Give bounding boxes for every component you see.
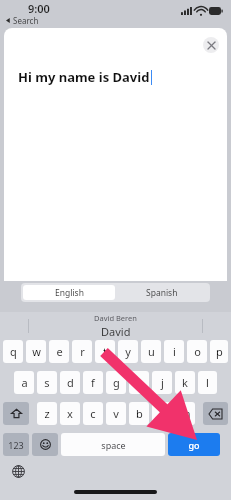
staticText: p bbox=[216, 344, 223, 359]
button[interactable]: t bbox=[95, 340, 115, 363]
staticText: m bbox=[180, 406, 191, 421]
staticText: o bbox=[194, 344, 201, 359]
button[interactable]: l bbox=[198, 371, 217, 394]
button[interactable]: Emoji bbox=[32, 433, 58, 456]
staticText: n bbox=[159, 406, 166, 421]
button[interactable]: p bbox=[210, 340, 228, 363]
staticText: k bbox=[182, 375, 188, 390]
staticText: l bbox=[206, 375, 209, 390]
staticText: Spanish bbox=[146, 287, 178, 299]
staticText: y bbox=[125, 344, 131, 359]
button[interactable]: z bbox=[37, 402, 57, 425]
staticText: i bbox=[173, 344, 176, 359]
button[interactable]: m bbox=[175, 402, 195, 425]
button[interactable]: Shift bbox=[3, 402, 29, 425]
button[interactable]: f bbox=[83, 371, 103, 394]
button[interactable]: Close bbox=[203, 37, 219, 53]
button[interactable]: e bbox=[49, 340, 69, 363]
button[interactable]: b bbox=[129, 402, 149, 425]
button[interactable]: d bbox=[60, 371, 80, 394]
staticText: space bbox=[101, 439, 126, 451]
button[interactable]: English bbox=[23, 285, 115, 300]
button[interactable]: s bbox=[37, 371, 57, 394]
button[interactable]: Change keyboard bbox=[12, 465, 25, 478]
staticText: b bbox=[136, 406, 143, 421]
button[interactable]: y bbox=[118, 340, 138, 363]
button[interactable]: r bbox=[72, 340, 92, 363]
button[interactable]: j bbox=[152, 371, 172, 394]
staticText: go bbox=[188, 439, 200, 451]
button[interactable]: k bbox=[175, 371, 195, 394]
button[interactable]: 123 bbox=[3, 433, 29, 456]
staticText: r bbox=[80, 344, 85, 359]
staticText: h bbox=[136, 375, 143, 390]
button[interactable]: h bbox=[129, 371, 149, 394]
staticText: Search bbox=[13, 15, 39, 26]
staticText: s bbox=[44, 375, 50, 390]
staticText: j bbox=[161, 375, 164, 390]
staticText: w bbox=[32, 344, 41, 359]
staticText: e bbox=[56, 344, 63, 359]
staticText: q bbox=[10, 344, 17, 359]
staticText: f bbox=[91, 375, 95, 390]
button[interactable]: space bbox=[61, 433, 165, 456]
staticText: David Beren bbox=[94, 313, 137, 323]
staticText: z bbox=[44, 406, 50, 421]
staticText: c bbox=[90, 406, 96, 421]
staticText: u bbox=[148, 344, 155, 359]
staticText: David bbox=[101, 324, 131, 339]
staticText: v bbox=[113, 406, 119, 421]
staticText: t bbox=[103, 344, 107, 359]
staticText: English bbox=[55, 287, 84, 299]
button[interactable]: w bbox=[26, 340, 46, 363]
staticText: 9:00 bbox=[28, 1, 50, 16]
button[interactable]: Spanish bbox=[115, 285, 208, 300]
button[interactable]: n bbox=[152, 402, 172, 425]
staticText: d bbox=[67, 375, 74, 390]
button[interactable]: i bbox=[164, 340, 184, 363]
button[interactable]: go bbox=[168, 433, 220, 456]
button[interactable]: v bbox=[106, 402, 126, 425]
button[interactable]: o bbox=[187, 340, 207, 363]
staticText: Hi my name is David bbox=[18, 68, 150, 86]
staticText: x bbox=[67, 406, 73, 421]
button[interactable]: u bbox=[141, 340, 161, 363]
button[interactable]: c bbox=[83, 402, 103, 425]
button[interactable]: a bbox=[14, 371, 34, 394]
staticText: g bbox=[113, 375, 120, 390]
button[interactable]: g bbox=[106, 371, 126, 394]
button[interactable]: Backspace bbox=[203, 402, 228, 425]
button[interactable]: x bbox=[60, 402, 80, 425]
staticText: 123 bbox=[8, 439, 24, 451]
button[interactable]: q bbox=[3, 340, 23, 363]
staticText: a bbox=[21, 375, 28, 390]
